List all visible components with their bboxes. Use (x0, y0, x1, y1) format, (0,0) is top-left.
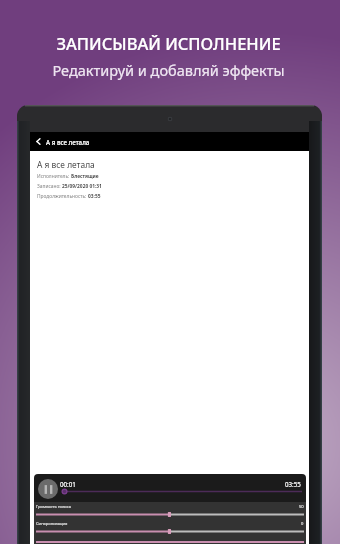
staticText: А я все летала (37, 159, 95, 170)
staticText: А я все летала (46, 138, 90, 146)
staticText: Синхронизация (36, 521, 68, 527)
button[interactable]: Pause (34, 474, 306, 502)
button[interactable]: Back (30, 132, 309, 151)
staticText: Продолжительность: (37, 193, 87, 200)
staticText: Исполнитель: (37, 173, 70, 180)
staticText: 25/09/2020 01:31 (62, 183, 102, 190)
staticText: 00:01 (60, 480, 76, 488)
staticText: 03:55 (88, 193, 101, 200)
staticText: 50 (299, 504, 304, 510)
button[interactable]: Синхронизация (34, 521, 306, 537)
staticText: Редактируй и добавляй эффекты (52, 60, 285, 80)
staticText: ЗАПИСЫВАЙ ИСПОЛНЕНИЕ (56, 32, 281, 54)
staticText: Блестящие (71, 173, 99, 180)
button[interactable]: Громкость голоса (34, 504, 306, 520)
staticText: 03:55 (285, 480, 301, 488)
button[interactable]: Back (30, 132, 46, 151)
staticText: Записано: (37, 183, 61, 190)
staticText: 0 (301, 521, 304, 527)
button[interactable] (34, 540, 306, 544)
staticText: Громкость голоса (36, 504, 72, 510)
button[interactable]: Pause (38, 479, 58, 499)
